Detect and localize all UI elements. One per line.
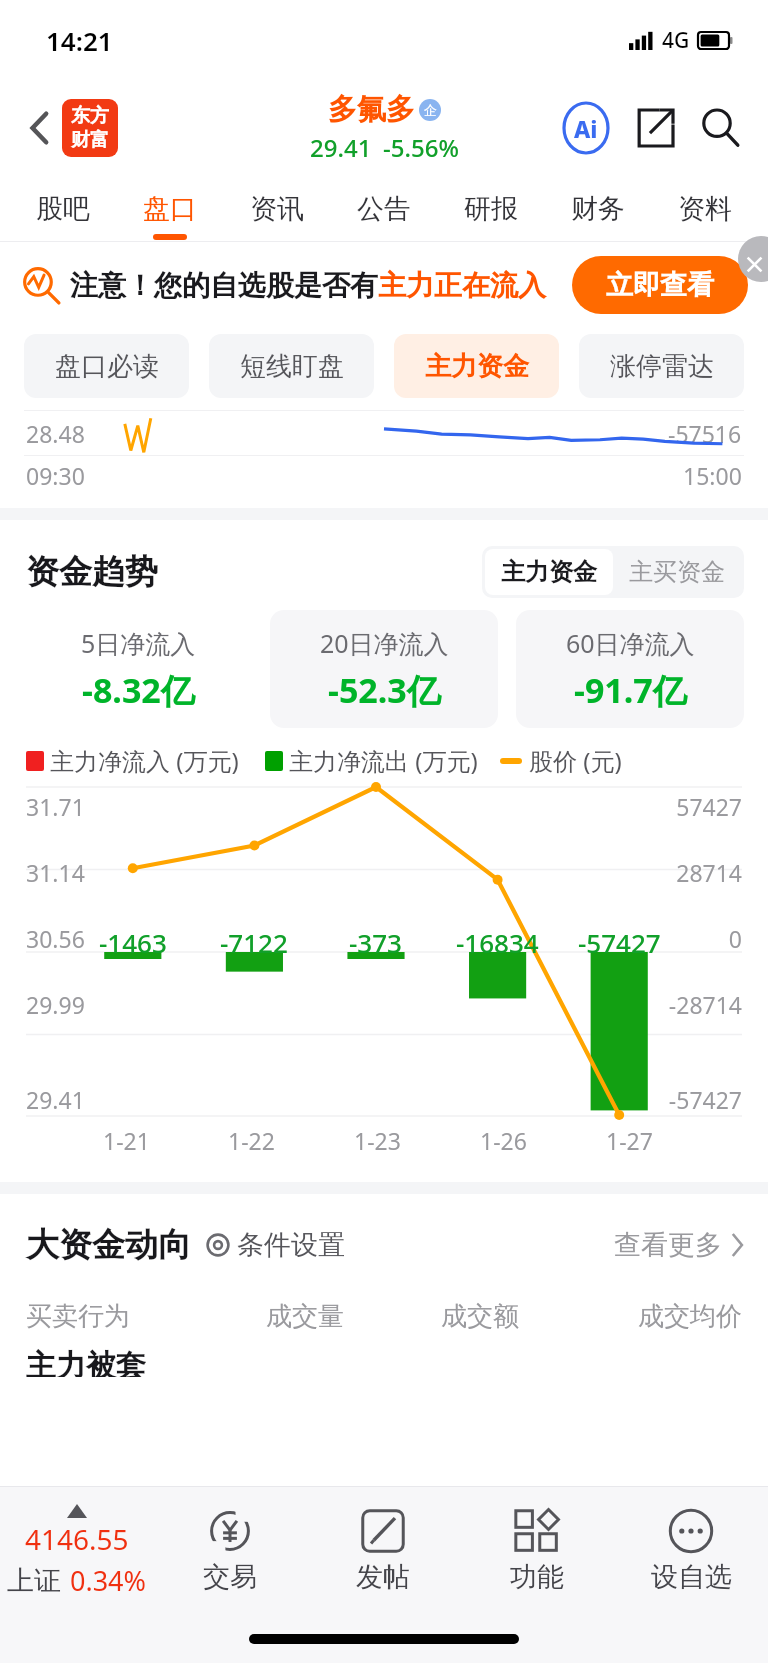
button[interactable]: 条件设置: [205, 1228, 345, 1262]
button[interactable]: 盘口必读: [24, 334, 189, 398]
button[interactable]: 发帖: [306, 1487, 460, 1615]
staticText: 东方: [71, 104, 109, 128]
staticText: 研报: [464, 192, 518, 226]
button[interactable]: 财务: [544, 176, 651, 242]
staticText: 57427: [676, 791, 742, 822]
staticText: 29.99: [26, 989, 85, 1020]
staticText: 公告: [357, 192, 411, 226]
button[interactable]: 5日净流入: [24, 610, 252, 728]
staticText: -57427: [668, 1084, 742, 1115]
staticText: 成交均价: [638, 1300, 742, 1333]
staticText: 盘口必读: [55, 350, 159, 383]
staticText: 4G: [662, 26, 690, 55]
staticText: 资金趋势: [26, 551, 158, 593]
staticText: 财务: [571, 192, 625, 226]
button[interactable]: 功能: [460, 1487, 614, 1615]
staticText: 31.14: [26, 857, 85, 888]
staticText: 发帖: [356, 1560, 410, 1594]
button[interactable]: 主买资金: [629, 549, 725, 595]
staticText: -7122: [220, 925, 288, 960]
button[interactable]: 股吧: [10, 176, 116, 242]
staticText: -373: [349, 925, 402, 960]
staticText: 涨停雷达: [610, 350, 714, 383]
button[interactable]: Share: [628, 101, 682, 155]
staticText: 1-21: [103, 1125, 150, 1156]
staticText: 09:30: [26, 460, 85, 491]
staticText: -8.32亿: [82, 667, 195, 713]
staticText: -5.56%: [383, 131, 459, 164]
button[interactable]: AI assistant: [558, 100, 614, 156]
staticText: 主力资金: [501, 557, 597, 587]
staticText: 30.56: [26, 923, 85, 954]
staticText: 短线盯盘: [240, 350, 344, 383]
staticText: 28714: [676, 857, 742, 888]
button[interactable]: 立即查看: [572, 256, 748, 314]
button[interactable]: 交易: [153, 1487, 306, 1615]
staticText: 盘口: [143, 192, 197, 226]
staticText: 主力被套: [26, 1347, 146, 1377]
staticText: 主买资金: [629, 557, 725, 587]
staticText: 多氟多: [328, 91, 415, 128]
staticText: 1-23: [354, 1125, 401, 1156]
staticText: 上证: [7, 1564, 61, 1598]
button[interactable]: 主力资金: [394, 334, 559, 398]
staticText: 买卖行为: [26, 1300, 130, 1333]
staticText: 条件设置: [237, 1228, 345, 1262]
staticText: 主力净流出 (万元): [289, 744, 478, 777]
staticText: 主力净流入 (万元): [50, 744, 239, 777]
button[interactable]: 短线盯盘: [209, 334, 374, 398]
staticText: 股吧: [36, 192, 90, 226]
staticText: 股价 (元): [529, 744, 622, 777]
button[interactable]: 20日净流入: [270, 610, 498, 728]
staticText: 功能: [510, 1560, 564, 1594]
staticText: Ai: [574, 113, 598, 144]
button[interactable]: 查看更多: [614, 1228, 744, 1262]
staticText: 15:00: [683, 460, 742, 491]
button[interactable]: 资讯: [223, 176, 330, 242]
staticText: 财富: [71, 128, 109, 152]
button[interactable]: 公告: [330, 176, 437, 242]
staticText: -16834: [456, 925, 539, 960]
staticText: 设自选: [651, 1560, 732, 1594]
staticText: 28.48: [26, 418, 85, 449]
button[interactable]: 研报: [437, 176, 544, 242]
staticText: 大资金动向: [26, 1224, 191, 1266]
staticText: 交易: [203, 1560, 257, 1594]
staticText: 29.41: [26, 1084, 85, 1115]
button[interactable]: 涨停雷达: [579, 334, 744, 398]
staticText: -57427: [578, 925, 661, 960]
button[interactable]: 东方: [62, 99, 118, 157]
staticText: -57516: [668, 418, 742, 449]
staticText: 查看更多: [614, 1228, 722, 1262]
staticText: 资讯: [250, 192, 304, 226]
button[interactable]: 60日净流入: [516, 610, 744, 728]
staticText: 1-22: [228, 1125, 275, 1156]
staticText: 主力正在流入: [378, 268, 546, 303]
staticText: 0.34%: [70, 1562, 147, 1599]
staticText: 20日净流入: [320, 626, 449, 660]
staticText: 29.41: [310, 131, 372, 164]
button[interactable]: 主力资金: [501, 549, 597, 595]
button[interactable]: 资料: [651, 176, 758, 242]
staticText: 0: [728, 923, 742, 954]
button[interactable]: Back: [18, 106, 62, 150]
staticText: 成交额: [441, 1300, 519, 1333]
staticText: 立即查看: [606, 268, 714, 302]
button[interactable]: Search: [694, 101, 748, 155]
staticText: -1463: [99, 925, 167, 960]
button[interactable]: 盘口: [116, 176, 223, 242]
staticText: 主力资金: [425, 350, 529, 383]
staticText: 1-26: [480, 1125, 527, 1156]
staticText: -28714: [668, 989, 742, 1020]
staticText: 成交量: [266, 1300, 344, 1333]
staticText: 注意！您的自选股是否有: [70, 268, 378, 303]
staticText: 60日净流入: [566, 626, 695, 660]
staticText: 31.71: [26, 791, 85, 822]
staticText: 1-27: [606, 1125, 653, 1156]
button[interactable]: Close banner: [738, 236, 768, 282]
button[interactable]: 设自选: [614, 1487, 768, 1615]
staticText: 企: [424, 102, 437, 118]
button[interactable]: 4146.55: [0, 1487, 153, 1615]
staticText: 资料: [678, 192, 732, 226]
staticText: -52.3亿: [328, 667, 441, 713]
